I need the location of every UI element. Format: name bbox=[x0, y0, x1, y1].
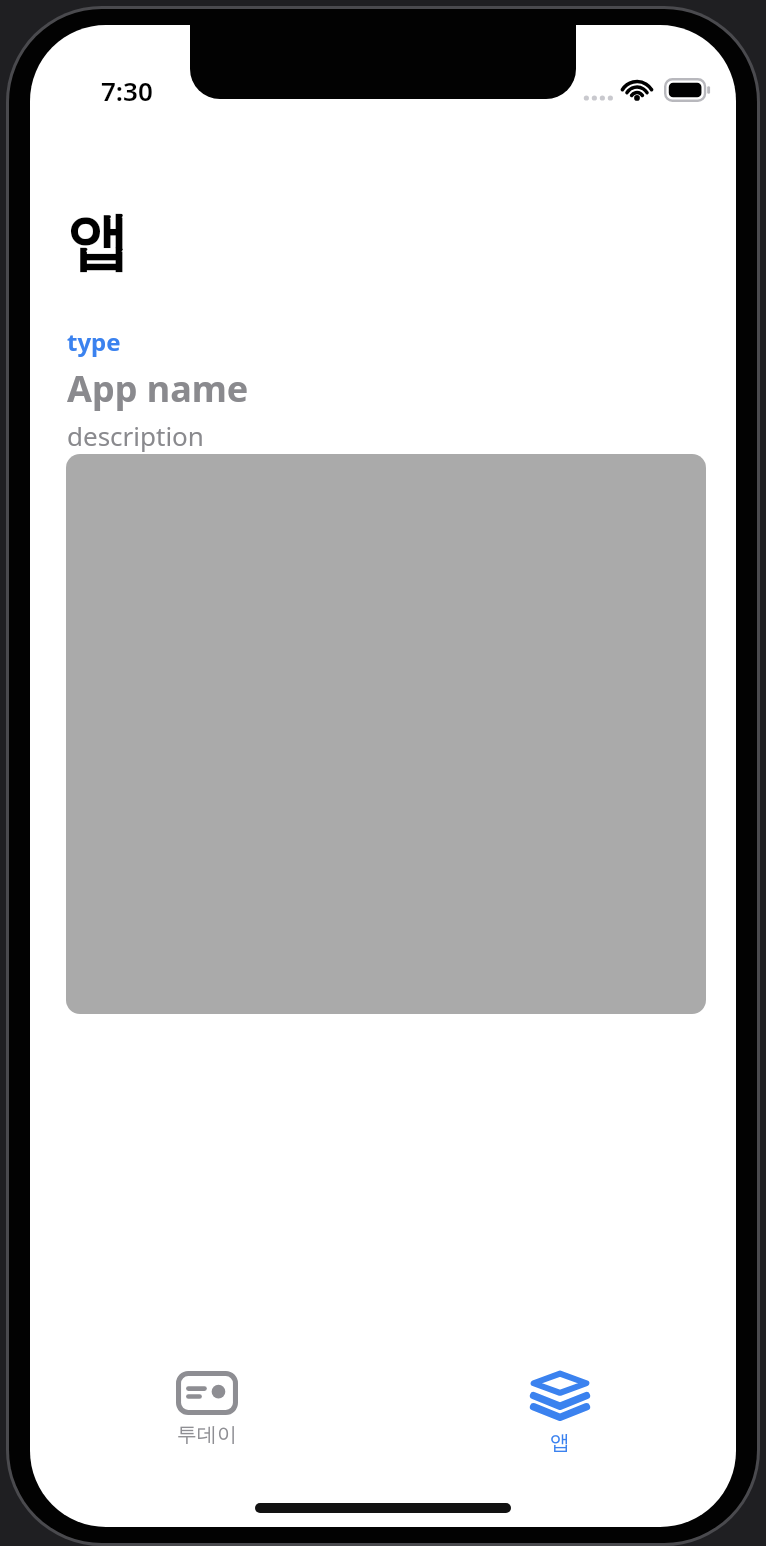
staticText: description bbox=[67, 418, 204, 453]
staticText: 7:30 bbox=[101, 73, 153, 108]
staticText: App name bbox=[67, 364, 249, 413]
button[interactable]: 투데이 bbox=[30, 1363, 383, 1467]
staticText: 투데이 bbox=[177, 1422, 237, 1447]
staticText: 앱 bbox=[550, 1430, 570, 1455]
staticText: 앱 bbox=[67, 203, 129, 281]
button[interactable]: 앱 bbox=[383, 1363, 736, 1467]
staticText: type bbox=[67, 325, 121, 358]
